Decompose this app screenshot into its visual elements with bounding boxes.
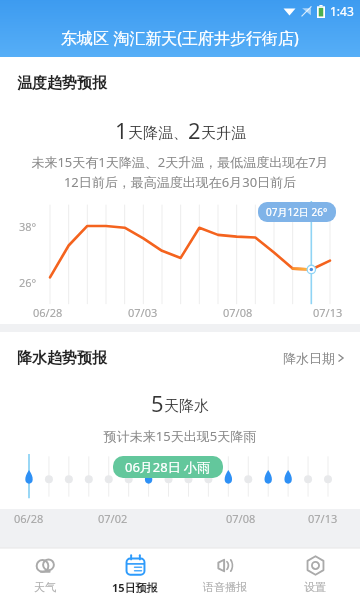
staticText: 语音播报 <box>203 580 247 594</box>
staticText: 降水日期 <box>283 350 335 366</box>
staticText: 26° <box>19 275 37 290</box>
button[interactable]: 天气 <box>0 548 90 600</box>
staticText: 未来15天有1天降温、2天升温，最低温度出现在7月12日前后，最高温度出现在6月… <box>26 153 334 191</box>
staticText: 东城区 淘汇新天(王府井步行街店) <box>61 27 299 49</box>
staticText: 07/03 <box>128 305 158 320</box>
staticText: 天气 <box>34 580 56 594</box>
staticText: 07/02 <box>98 511 128 526</box>
staticText: 07/08 <box>226 511 256 526</box>
staticText: 07/08 <box>223 305 253 320</box>
staticText: 38° <box>19 219 37 234</box>
button[interactable]: 06月28日 小雨 <box>113 456 223 478</box>
staticText: 温度趋势预报 <box>17 74 107 93</box>
staticText: 1 <box>115 115 128 145</box>
staticText: 07/13 <box>313 305 343 320</box>
staticText: 07/13 <box>308 511 338 526</box>
staticText: 06/28 <box>14 511 44 526</box>
button[interactable]: 15日预报 <box>90 548 180 600</box>
button[interactable]: 语音播报 <box>180 548 270 600</box>
staticText: 07月12日 26° <box>266 205 328 219</box>
staticText: 5 <box>151 388 164 418</box>
button[interactable]: 降水日期 <box>281 346 346 370</box>
staticText: 降水趋势预报 <box>17 349 107 368</box>
button[interactable]: 07月12日 26° <box>258 202 336 222</box>
staticText: 1:43 <box>330 3 354 19</box>
staticText: 天升温 <box>201 124 246 143</box>
staticText: 06/28 <box>33 305 63 320</box>
staticText: 06月28日 小雨 <box>125 458 211 476</box>
staticText: 设置 <box>304 580 326 594</box>
staticText: 2 <box>188 115 201 145</box>
staticText: 15日预报 <box>112 580 158 595</box>
staticText: 天降水 <box>164 397 209 416</box>
staticText: 天降温、 <box>128 124 188 143</box>
button[interactable]: 设置 <box>270 548 360 600</box>
staticText: 预计未来15天出现5天降雨 <box>0 427 360 445</box>
